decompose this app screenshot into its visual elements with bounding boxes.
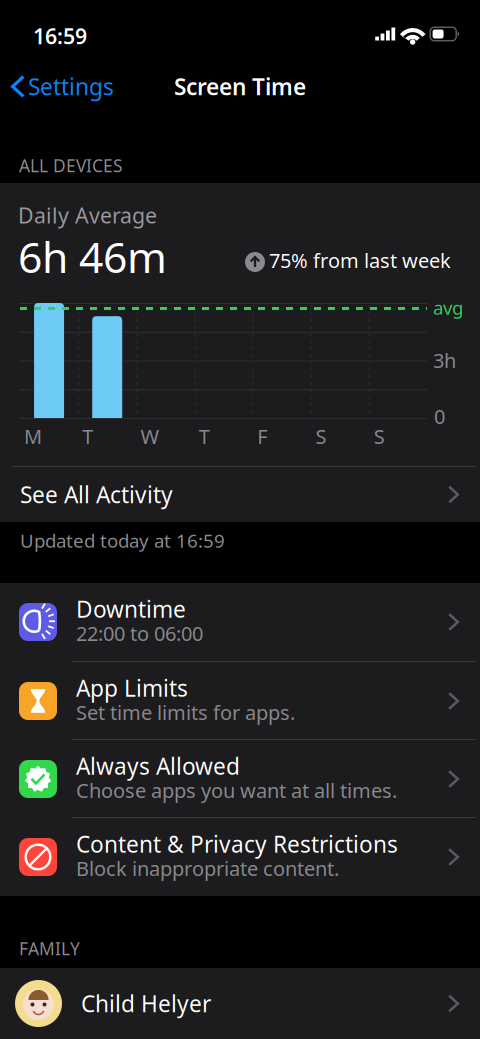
- staticText: M: [24, 423, 42, 450]
- staticText: Screen Time: [174, 71, 306, 101]
- button[interactable]: App Limits: [0, 662, 480, 739]
- staticText: See All Activity: [20, 479, 173, 509]
- staticText: Child Helyer: [81, 988, 211, 1018]
- button[interactable]: Content & Privacy Restrictions: [0, 818, 480, 896]
- staticText: 0: [434, 403, 445, 430]
- staticText: W: [141, 423, 160, 450]
- staticText: Daily Average: [18, 201, 157, 229]
- staticText: F: [257, 423, 267, 450]
- button[interactable]: Settings: [0, 63, 126, 109]
- staticText: Block inappropriate content.: [76, 855, 339, 882]
- staticText: 22:00 to 06:00: [76, 620, 203, 647]
- button[interactable]: Always Allowed: [0, 740, 480, 817]
- button[interactable]: Downtime: [0, 583, 480, 661]
- staticText: T: [199, 423, 210, 450]
- staticText: Updated today at 16:59: [20, 528, 225, 553]
- staticText: 16:59: [33, 22, 87, 50]
- staticText: Set time limits for apps.: [76, 699, 295, 726]
- staticText: S: [315, 423, 326, 450]
- staticText: 6h 46m: [18, 228, 167, 285]
- staticText: FAMILY: [19, 937, 80, 960]
- staticText: 3h: [433, 347, 456, 374]
- staticText: Always Allowed: [76, 751, 240, 781]
- staticText: App Limits: [76, 673, 188, 703]
- staticText: Downtime: [76, 594, 186, 624]
- button[interactable]: Child Helyer: [0, 968, 480, 1039]
- staticText: ALL DEVICES: [19, 154, 123, 177]
- staticText: S: [374, 423, 385, 450]
- button[interactable]: See All Activity: [0, 466, 480, 522]
- staticText: Choose apps you want at all times.: [76, 777, 397, 804]
- staticText: avg: [433, 295, 463, 320]
- staticText: Settings: [28, 71, 114, 101]
- staticText: T: [82, 423, 93, 450]
- staticText: 75% from last week: [269, 247, 451, 274]
- staticText: Content & Privacy Restrictions: [76, 829, 398, 859]
